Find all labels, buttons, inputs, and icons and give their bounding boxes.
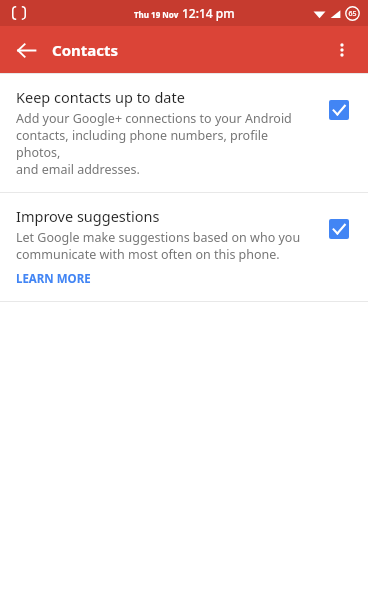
button[interactable]: Improve suggestions bbox=[324, 214, 354, 244]
button[interactable]: LEARN MORE bbox=[16, 271, 91, 287]
staticText: Improve suggestions bbox=[16, 206, 160, 226]
staticText: 65 bbox=[348, 9, 357, 19]
staticText: Contacts bbox=[52, 40, 119, 60]
staticText: Keep contacts up to date bbox=[16, 87, 185, 107]
staticText: Thu 19 Nov bbox=[134, 9, 179, 20]
button[interactable]: Back bbox=[6, 30, 46, 70]
button[interactable]: Keep contacts up to date bbox=[324, 95, 354, 125]
staticText: 12:14 pm bbox=[182, 5, 235, 21]
button[interactable]: More options bbox=[322, 30, 362, 70]
staticText: LEARN MORE bbox=[16, 271, 91, 287]
button[interactable]: Improve suggestions bbox=[0, 193, 368, 301]
staticText: Add your Google+ connections to your And… bbox=[16, 110, 314, 178]
staticText: Let Google make suggestions based on who… bbox=[16, 229, 301, 263]
button[interactable]: Keep contacts up to date bbox=[0, 74, 368, 192]
